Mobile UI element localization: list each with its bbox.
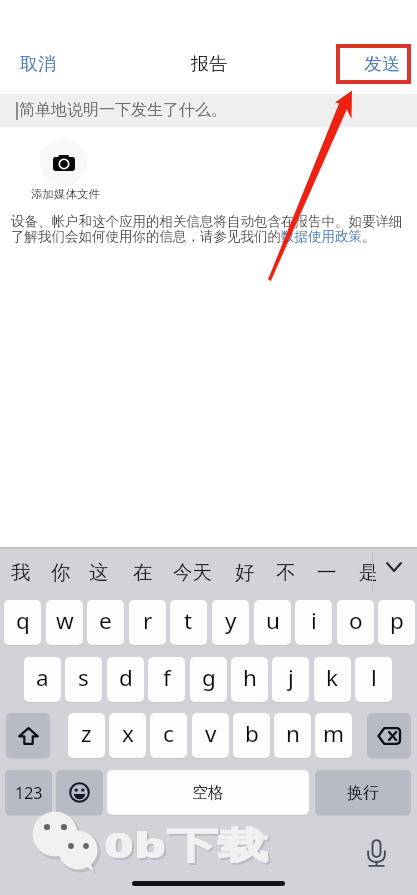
button[interactable]: e: [87, 600, 124, 645]
staticText: z: [81, 718, 92, 749]
staticText: r: [143, 605, 153, 636]
staticText: a: [36, 662, 49, 693]
staticText: v: [205, 718, 217, 749]
staticText: 换行: [347, 783, 379, 803]
button[interactable]: 是: [359, 560, 376, 584]
button[interactable]: b: [233, 713, 270, 758]
button[interactable]: c: [150, 713, 187, 758]
staticText: 设备、帐户和这个应用的相关信息将自动包含在报告中。如要详细: [11, 213, 403, 230]
button[interactable]: y: [212, 600, 249, 645]
staticText: u: [266, 605, 280, 636]
staticText: 我: [11, 560, 31, 584]
staticText: 取消: [20, 53, 56, 76]
button[interactable]: 你: [51, 560, 71, 584]
staticText: c: [163, 718, 174, 749]
staticText: 空格: [192, 783, 224, 803]
staticText: 是: [359, 560, 376, 584]
button[interactable]: 一: [317, 560, 337, 584]
button[interactable]: 取消: [20, 53, 56, 76]
button[interactable]: 换行: [315, 770, 411, 815]
staticText: h: [243, 662, 257, 693]
button[interactable]: o: [337, 600, 374, 645]
staticText: y: [225, 605, 237, 636]
staticText: i: [311, 605, 317, 636]
staticText: 今天: [173, 560, 212, 584]
button[interactable]: 好: [235, 560, 255, 584]
staticText: e: [99, 605, 112, 636]
staticText: 在: [133, 560, 153, 584]
button[interactable]: q: [4, 600, 41, 645]
staticText: s: [78, 662, 89, 693]
button[interactable]: t: [170, 600, 207, 645]
staticText: x: [122, 718, 134, 749]
staticText: j: [288, 662, 294, 693]
staticText: 添加媒体文件: [31, 187, 100, 201]
button[interactable]: 数据使用政策: [281, 228, 362, 245]
staticText: m: [323, 718, 345, 749]
button[interactable]: Emoji: [56, 770, 103, 815]
staticText: w: [56, 605, 74, 636]
button[interactable]: 我: [11, 560, 31, 584]
staticText: b: [245, 718, 259, 749]
button[interactable]: Shift: [6, 713, 50, 758]
button[interactable]: x: [109, 713, 146, 758]
staticText: 简单地说明一下发生了什么。: [19, 100, 227, 120]
staticText: f: [163, 662, 171, 693]
staticText: 0b下载: [104, 819, 269, 868]
staticText: 0b下载: [106, 821, 271, 870]
button[interactable]: p: [378, 600, 415, 645]
staticText: d: [119, 662, 133, 693]
staticText: 。: [362, 228, 376, 245]
button[interactable]: a: [24, 657, 61, 702]
staticText: q: [16, 605, 30, 636]
staticText: 了解我们会如何使用你的信息，请参见我们的: [11, 228, 281, 245]
button[interactable]: 添加媒体文件: [40, 139, 87, 186]
staticText: 你: [51, 560, 71, 584]
button[interactable]: g: [190, 657, 227, 702]
button[interactable]: f: [148, 657, 185, 702]
staticText: g: [202, 662, 216, 693]
button[interactable]: 123: [5, 770, 52, 815]
button[interactable]: j: [272, 657, 309, 702]
staticText: t: [184, 605, 193, 636]
staticText: 这: [89, 560, 109, 584]
staticText: 报告: [191, 53, 227, 76]
button[interactable]: k: [314, 657, 351, 702]
button[interactable]: u: [254, 600, 291, 645]
staticText: 一: [317, 560, 337, 584]
staticText: o: [349, 605, 363, 636]
staticText: 123: [15, 782, 43, 804]
button[interactable]: 在: [133, 560, 153, 584]
button[interactable]: Collapse keyboard: [381, 554, 407, 580]
button[interactable]: 发送: [364, 53, 400, 76]
button[interactable]: 这: [89, 560, 109, 584]
button[interactable]: d: [107, 657, 144, 702]
staticText: 不: [276, 560, 296, 584]
button[interactable]: i: [295, 600, 332, 645]
button[interactable]: r: [129, 600, 166, 645]
button[interactable]: v: [192, 713, 229, 758]
staticText: 发送: [364, 53, 400, 76]
staticText: 好: [235, 560, 255, 584]
staticText: p: [390, 605, 404, 636]
button[interactable]: 不: [276, 560, 296, 584]
button[interactable]: w: [46, 600, 83, 645]
button[interactable]: h: [231, 657, 268, 702]
staticText: n: [286, 718, 300, 749]
button[interactable]: Backspace: [367, 713, 411, 758]
button[interactable]: s: [65, 657, 102, 702]
button[interactable]: n: [274, 713, 311, 758]
button[interactable]: l: [355, 657, 392, 702]
button[interactable]: 今天: [173, 560, 212, 584]
button[interactable]: z: [68, 713, 105, 758]
button[interactable]: Voice input: [360, 837, 392, 869]
button[interactable]: m: [315, 713, 352, 758]
staticText: k: [326, 662, 339, 693]
button[interactable]: 空格: [107, 770, 309, 815]
staticText: l: [371, 662, 377, 693]
